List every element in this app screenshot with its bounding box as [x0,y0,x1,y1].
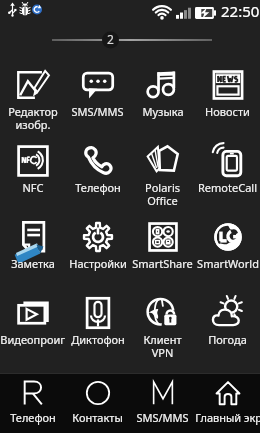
button[interactable]: Настройки [65,218,130,294]
button[interactable]: Главный экран [195,374,260,433]
button[interactable]: Видеопроигр. [0,294,65,370]
staticText: Редактор изобр. [8,104,58,132]
staticText: Погода [208,332,247,347]
staticText: Контакты [72,410,123,425]
button[interactable]: Новости [195,66,260,142]
staticText: SMS/MMS [136,410,189,425]
staticText: SmartWorld [197,256,259,271]
staticText: SmartShare [132,256,193,271]
button[interactable]: SmartWorld [195,218,260,294]
button[interactable]: Контакты [65,374,130,433]
button[interactable]: SMS/MMS [130,374,195,433]
button[interactable]: SmartShare [130,218,195,294]
staticText: Новости [205,104,250,119]
button[interactable]: Погода [195,294,260,370]
button[interactable]: Телефон [0,374,65,433]
staticText: SMS/MMS [71,104,124,119]
button[interactable]: Диктофон [65,294,130,370]
staticText: Телефон [75,180,121,195]
staticText: Заметка [11,256,55,271]
staticText: 22:50 [221,1,260,21]
staticText: Главный экран [195,410,260,425]
button[interactable]: Polaris Office [130,142,195,218]
button[interactable]: RemoteCall [195,142,260,218]
button[interactable]: Музыка [130,66,195,142]
staticText: Настройки [69,256,127,271]
staticText: Музыка [142,104,184,119]
staticText: Видеопроигр. [0,332,65,347]
staticText: Клиент VPN [143,332,182,360]
staticText: Диктофон [71,332,125,347]
button[interactable]: NFC [0,142,65,218]
staticText: Телефон [10,410,56,425]
staticText: NFC [22,180,44,195]
button[interactable]: Клиент VPN [130,294,195,370]
staticText: Polaris Office [145,180,180,208]
button[interactable]: SMS/MMS [65,66,130,142]
button[interactable]: Редактор изобр. [0,66,65,142]
staticText: 2 [107,31,114,47]
button[interactable]: Заметка [0,218,65,294]
staticText: RemoteCall [198,180,257,195]
button[interactable]: Телефон [65,142,130,218]
